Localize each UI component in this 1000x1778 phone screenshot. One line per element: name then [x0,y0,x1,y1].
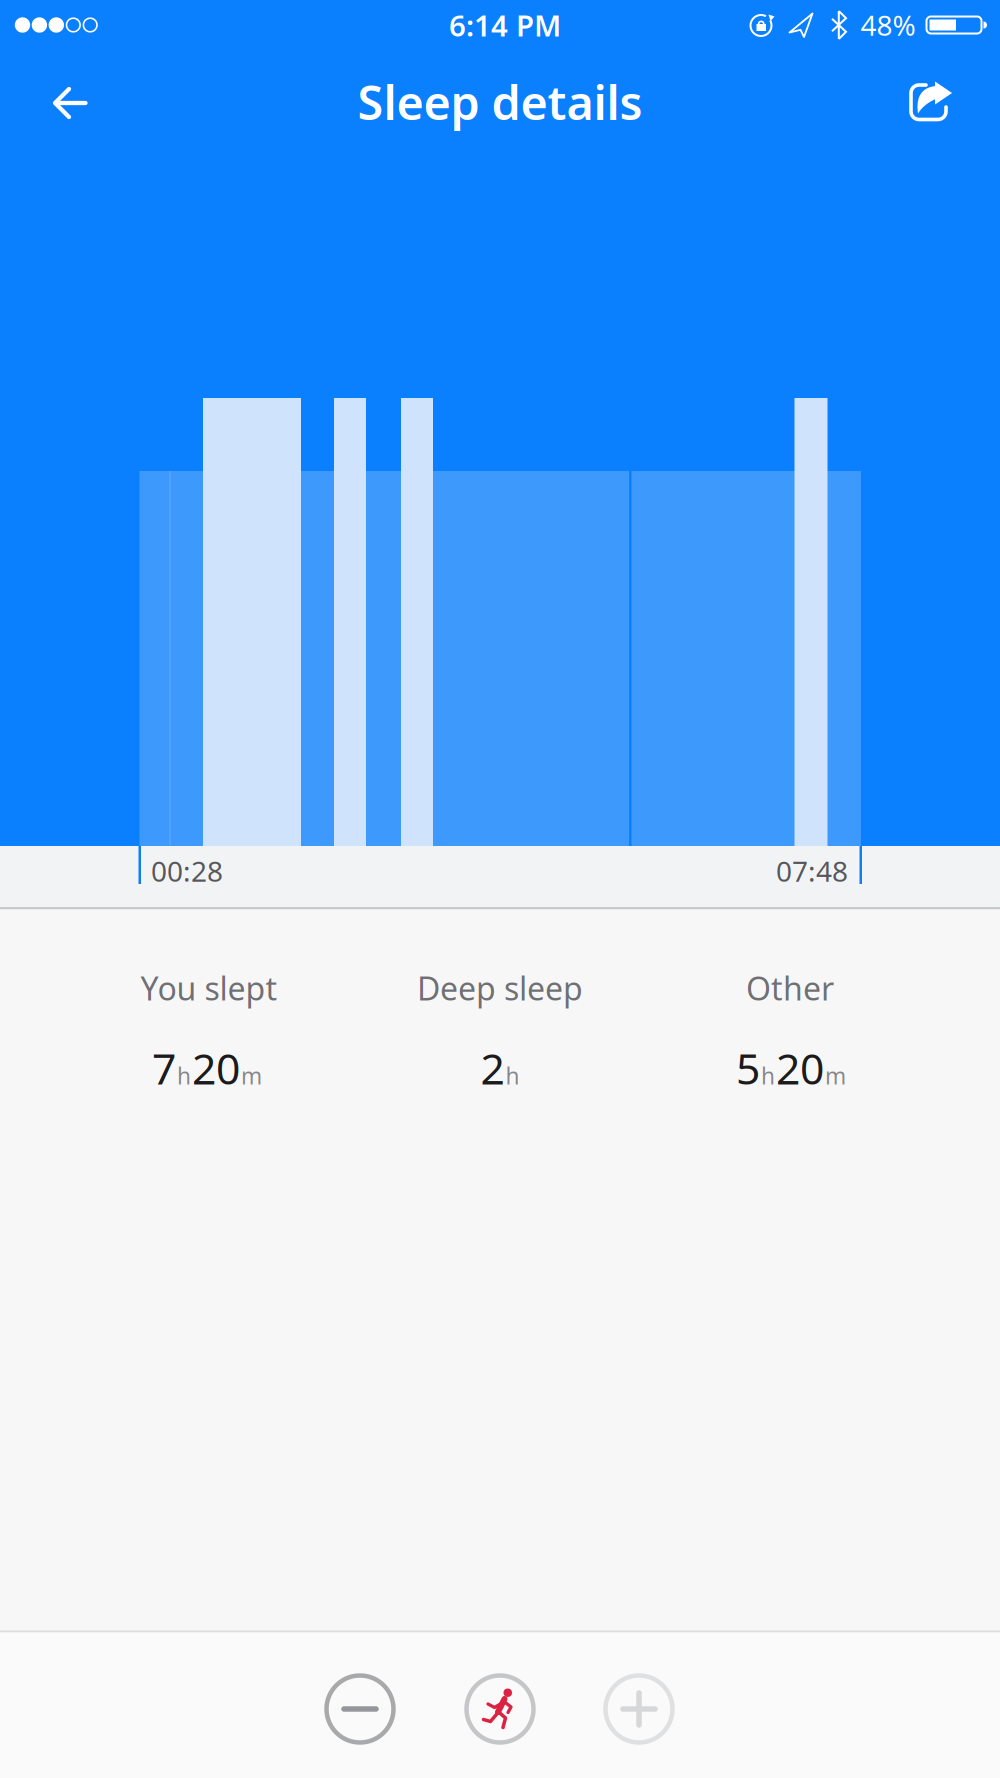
staticText: 48% [860,6,915,44]
staticText: m [825,1061,846,1091]
button[interactable]: Increase [594,1664,684,1754]
staticText: h [761,1061,775,1091]
staticText: Sleep details [357,71,642,133]
staticText: 20 [776,1040,824,1096]
staticText: 00:28 [151,852,223,890]
staticText: 6:14 PM [449,5,561,44]
staticText: m [241,1061,262,1091]
staticText: Other [746,967,834,1009]
staticText: 5 [736,1040,760,1096]
staticText: 2 [480,1040,504,1096]
button[interactable]: Activity [455,1664,545,1754]
staticText: h [505,1061,519,1091]
staticText: Deep sleep [417,967,583,1009]
staticText: You slept [140,967,277,1009]
staticText: 20 [192,1040,240,1096]
staticText: 07:48 [776,852,848,890]
button[interactable]: Back [30,62,110,142]
staticText: 7 [152,1040,176,1096]
staticText: h [177,1061,191,1091]
button[interactable]: Decrease [315,1664,405,1754]
button[interactable]: Share [889,62,969,142]
